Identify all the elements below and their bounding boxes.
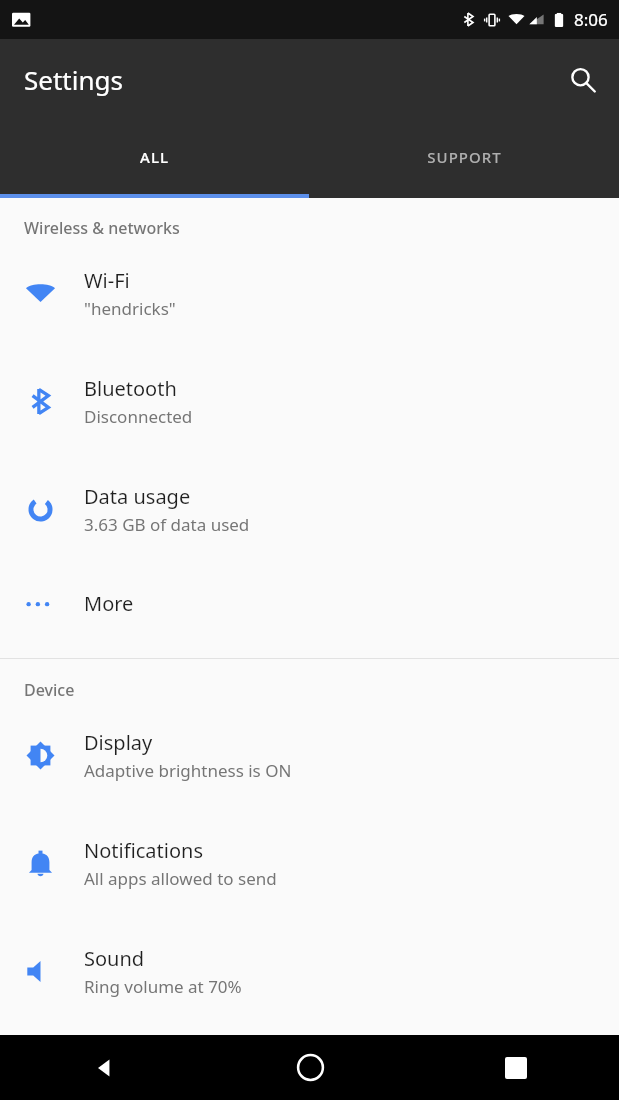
- button[interactable]: ALL: [0, 120, 309, 194]
- button[interactable]: Sound: [0, 917, 619, 1025]
- staticText: Display: [84, 729, 153, 756]
- staticText: Disconnected: [84, 405, 193, 428]
- button[interactable]: Wi-Fi: [0, 239, 619, 347]
- button[interactable]: More: [0, 563, 619, 643]
- staticText: 8:06: [574, 8, 608, 31]
- staticText: Wireless & networks: [24, 217, 180, 239]
- staticText: Adaptive brightness is ON: [84, 759, 292, 782]
- button[interactable]: Notifications: [0, 809, 619, 917]
- staticText: ALL: [140, 147, 169, 167]
- button[interactable]: Data usage: [0, 455, 619, 563]
- staticText: Sound: [84, 945, 145, 972]
- staticText: Device: [24, 679, 75, 701]
- staticText: Settings: [24, 62, 123, 97]
- staticText: More: [84, 590, 134, 617]
- button[interactable]: Bluetooth: [0, 347, 619, 455]
- staticText: Data usage: [84, 483, 191, 510]
- button[interactable]: SUPPORT: [309, 120, 619, 194]
- staticText: Bluetooth: [84, 375, 177, 402]
- button[interactable]: Recent apps: [413, 1035, 619, 1100]
- staticText: Ring volume at 70%: [84, 975, 242, 998]
- button[interactable]: Display: [0, 701, 619, 809]
- button[interactable]: Back: [0, 1035, 207, 1100]
- staticText: "hendricks": [84, 297, 176, 320]
- staticText: 3.63 GB of data used: [84, 513, 250, 536]
- button[interactable]: Search: [559, 56, 607, 104]
- staticText: Notifications: [84, 837, 203, 864]
- staticText: All apps allowed to send: [84, 867, 277, 890]
- button[interactable]: Home: [207, 1035, 413, 1100]
- staticText: Wi-Fi: [84, 267, 130, 294]
- staticText: SUPPORT: [427, 147, 502, 167]
